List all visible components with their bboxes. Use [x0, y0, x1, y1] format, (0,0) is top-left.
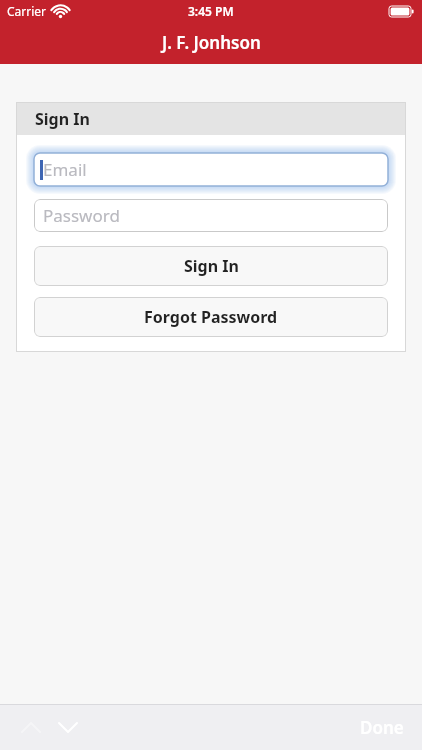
staticText: J. F. Jonhson	[162, 31, 261, 54]
button[interactable]: Sign In	[34, 246, 388, 286]
button[interactable]: Email	[34, 153, 388, 186]
button[interactable]: Done	[360, 716, 404, 739]
button[interactable]	[54, 713, 82, 741]
staticText: Password	[43, 204, 120, 227]
button[interactable]: Forgot Password	[34, 297, 388, 337]
staticText: Sign In	[35, 108, 90, 130]
staticText: Done	[360, 716, 404, 739]
staticText: Email	[43, 158, 87, 181]
staticText: Carrier	[7, 3, 47, 19]
staticText: Forgot Password	[144, 306, 278, 328]
staticText: Sign In	[184, 255, 239, 277]
staticText: 3:45 PM	[188, 3, 234, 19]
button[interactable]: Password	[34, 199, 388, 232]
